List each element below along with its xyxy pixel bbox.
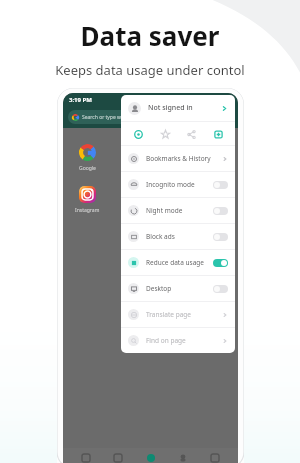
button[interactable]: Off: [213, 181, 228, 189]
button[interactable]: Desktop: [121, 276, 235, 301]
staticText: Keeps data usage under contol: [0, 61, 300, 79]
staticText: Night mode: [146, 206, 183, 215]
button[interactable]: Night mode: [121, 198, 235, 223]
staticText: Not signed in: [148, 103, 193, 113]
button[interactable]: Nav 0: [77, 449, 95, 463]
button[interactable]: Nav 4: [206, 449, 224, 463]
staticText: Block ads: [146, 232, 175, 241]
button[interactable]: Off: [213, 207, 228, 215]
button[interactable]: Nav 3: [174, 449, 192, 463]
button[interactable]: Translate page: [121, 302, 235, 327]
button[interactable]: New tab: [209, 125, 227, 143]
button[interactable]: Nav 1: [109, 449, 127, 463]
other: Open: [221, 105, 228, 112]
staticText: Desktop: [146, 284, 172, 293]
staticText: Instagram: [75, 207, 100, 214]
button[interactable]: Off: [213, 233, 228, 241]
button[interactable]: Not signed in: [121, 95, 235, 121]
button[interactable]: Nav 2: [142, 449, 160, 463]
staticText: 3:19 PM: [69, 96, 92, 104]
staticText: Search or type web address: [82, 114, 147, 121]
staticText: Find on page: [146, 336, 186, 345]
staticText: Reduce data usage: [146, 258, 204, 267]
button[interactable]: Refresh: [129, 125, 147, 143]
staticText: Data saver: [0, 18, 300, 53]
staticText: Incognito mode: [146, 180, 195, 189]
button[interactable]: Bookmarks & History: [121, 146, 235, 171]
button[interactable]: Incognito mode: [121, 172, 235, 197]
button[interactable]: Find on page: [121, 328, 235, 353]
button[interactable]: Block ads: [121, 224, 235, 249]
staticText: Bookmarks & History: [146, 154, 211, 163]
staticText: Translate page: [146, 310, 191, 319]
staticText: Google: [79, 165, 96, 172]
button[interactable]: On: [213, 259, 228, 267]
button[interactable]: Search or type web address: [68, 110, 233, 124]
button[interactable]: Reduce data usage: [121, 250, 235, 275]
button[interactable]: Off: [213, 285, 228, 293]
button[interactable]: Bookmark: [156, 125, 174, 143]
button[interactable]: Share: [182, 125, 200, 143]
